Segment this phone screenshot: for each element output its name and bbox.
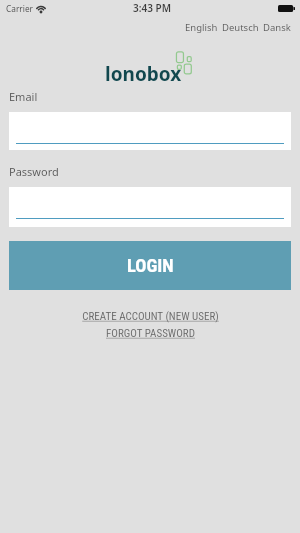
button[interactable]: Deutsch <box>222 21 259 34</box>
staticText: Dansk <box>263 21 291 34</box>
button[interactable]: CREATE ACCOUNT (NEW USER) <box>82 310 219 323</box>
button[interactable]: LOGIN <box>9 241 291 290</box>
staticText: Password <box>9 164 59 179</box>
staticText: lonobox <box>105 61 182 87</box>
staticText: Email <box>9 89 38 104</box>
staticText: 3:43 PM <box>133 1 171 15</box>
staticText: CREATE ACCOUNT (NEW USER) <box>82 310 219 323</box>
button[interactable] <box>9 112 291 150</box>
button[interactable]: Dansk <box>263 21 291 34</box>
button[interactable] <box>9 187 291 227</box>
staticText: Carrier <box>6 3 33 14</box>
other: Wi-Fi <box>36 5 46 13</box>
staticText: Deutsch <box>222 21 259 34</box>
staticText: FORGOT PASSWORD <box>106 327 195 340</box>
other: Battery <box>278 5 295 12</box>
staticText: English <box>185 21 218 34</box>
button[interactable]: FORGOT PASSWORD <box>106 327 195 340</box>
staticText: LOGIN <box>127 255 174 277</box>
button[interactable]: English <box>185 21 218 34</box>
